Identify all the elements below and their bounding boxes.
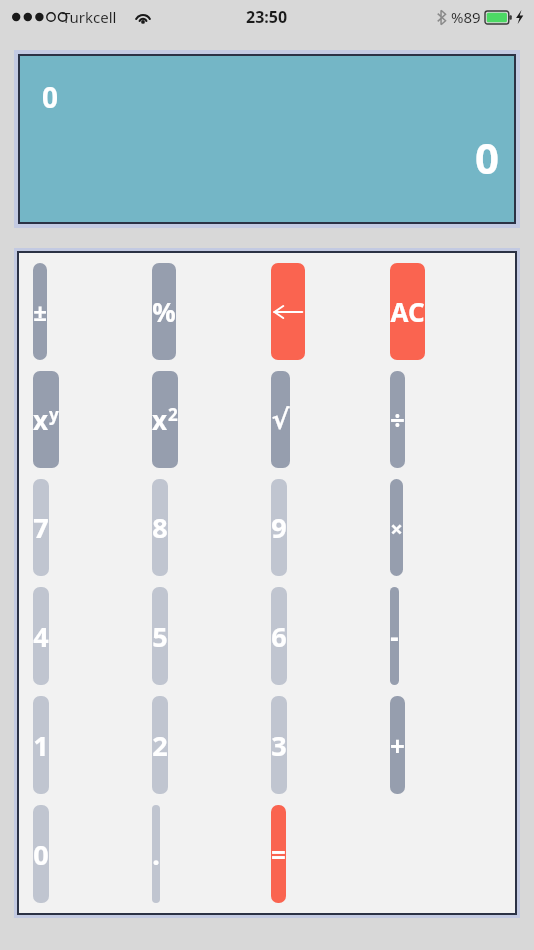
button[interactable]: √ — [271, 371, 290, 468]
staticText: ÷ — [390, 402, 405, 437]
button[interactable]: AC — [390, 263, 425, 360]
button[interactable]: 9 — [271, 479, 287, 576]
staticText: . — [152, 836, 160, 873]
button[interactable]: ÷ — [390, 371, 405, 468]
staticText: = — [271, 837, 286, 872]
staticText: 7 — [33, 509, 49, 546]
staticText: 6 — [271, 618, 287, 655]
staticText: ± — [33, 295, 47, 328]
button[interactable]: x — [152, 371, 178, 468]
button[interactable]: 0 — [33, 805, 49, 903]
button[interactable]: % — [152, 263, 176, 360]
button[interactable]: 5 — [152, 587, 168, 685]
staticText: AC — [390, 294, 425, 329]
staticText: - — [390, 619, 399, 654]
staticText: 8 — [152, 509, 168, 546]
button[interactable]: 7 — [33, 479, 49, 576]
staticText: 0 — [42, 78, 59, 116]
button[interactable]: . — [152, 805, 160, 903]
button[interactable]: × — [390, 479, 403, 576]
staticText: 2 — [168, 403, 178, 426]
staticText: Turkcell — [62, 7, 117, 27]
staticText: 0 — [475, 129, 500, 186]
button[interactable]: + — [390, 696, 405, 794]
staticText: y — [49, 403, 59, 426]
button[interactable]: 1 — [33, 696, 49, 794]
staticText: 5 — [152, 618, 168, 655]
button[interactable]: ± — [33, 263, 47, 360]
staticText: 1 — [33, 727, 49, 764]
staticText: x — [152, 402, 168, 437]
staticText: × — [390, 513, 403, 543]
button[interactable]: = — [271, 805, 286, 903]
staticText: 0 — [33, 836, 49, 873]
staticText: 4 — [33, 618, 49, 655]
staticText: %89 — [451, 7, 481, 27]
button[interactable]: 6 — [271, 587, 287, 685]
button[interactable]: Backspace — [271, 263, 305, 360]
button[interactable]: 3 — [271, 696, 287, 794]
button[interactable]: 4 — [33, 587, 49, 685]
staticText: 23:50 — [246, 6, 288, 28]
button[interactable]: x — [33, 371, 59, 468]
staticText: + — [390, 728, 405, 763]
staticText: x — [33, 402, 49, 437]
staticText: 2 — [152, 727, 168, 764]
staticText: 3 — [271, 727, 287, 764]
button[interactable]: 8 — [152, 479, 168, 576]
staticText: 9 — [271, 509, 287, 546]
staticText: √ — [271, 404, 290, 435]
staticText: % — [152, 294, 176, 329]
button[interactable]: - — [390, 587, 399, 685]
button[interactable]: 2 — [152, 696, 168, 794]
